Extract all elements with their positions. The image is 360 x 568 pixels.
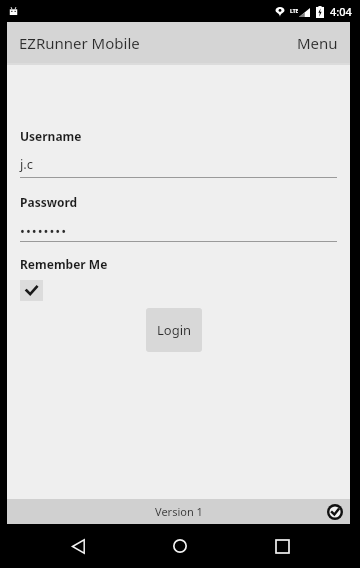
button[interactable]: Back: [54, 524, 102, 568]
button[interactable]: Login: [146, 308, 202, 352]
staticText: Username: [20, 128, 82, 144]
staticText: Remember Me: [20, 256, 108, 272]
button[interactable]: Recent apps: [258, 524, 306, 568]
button[interactable]: Home: [156, 524, 204, 568]
staticText: 4:04: [330, 4, 352, 19]
button[interactable]: Remember Me checkbox: [20, 280, 43, 301]
button[interactable]: j.c: [20, 155, 337, 178]
button[interactable]: Menu: [285, 25, 350, 61]
staticText: ••••••••: [20, 222, 68, 239]
staticText: EZRunner Mobile: [19, 33, 140, 53]
staticText: Password: [20, 194, 78, 210]
staticText: j.c: [20, 155, 34, 173]
staticText: Version 1: [155, 504, 203, 519]
staticText: Menu: [297, 33, 338, 53]
staticText: LTE: [290, 8, 299, 15]
button[interactable]: ••••••••: [20, 222, 337, 242]
button[interactable]: Status OK: [324, 501, 346, 523]
staticText: Login: [157, 321, 192, 339]
